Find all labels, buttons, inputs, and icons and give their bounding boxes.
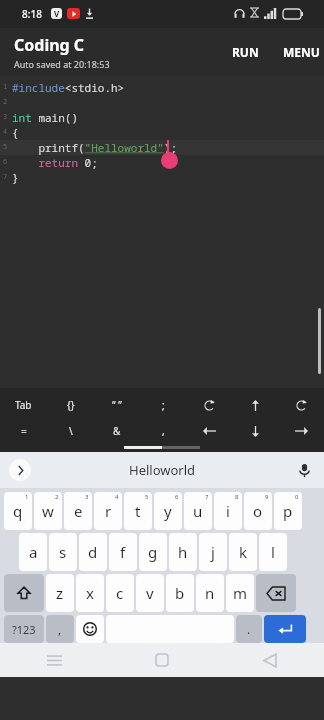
button[interactable]: v: [136, 574, 164, 612]
staticText: \: [69, 424, 73, 438]
button[interactable]: t: [124, 492, 152, 530]
button[interactable]: b: [166, 574, 194, 612]
button[interactable]: w: [34, 492, 62, 530]
staticText: ?123: [12, 622, 36, 637]
staticText: 7: [3, 172, 8, 182]
button[interactable]: =: [0, 420, 47, 442]
button[interactable]: a: [19, 533, 47, 571]
button[interactable]: Backspace: [256, 574, 296, 612]
staticText: 1: [25, 493, 29, 501]
staticText: {: [12, 125, 19, 140]
staticText: v: [146, 583, 154, 603]
button[interactable]: More suggestions: [9, 459, 31, 481]
button[interactable]: Shift: [4, 574, 44, 612]
staticText: 6: [3, 157, 8, 167]
button[interactable]: Back: [216, 643, 324, 677]
staticText: w: [42, 501, 54, 521]
staticText: 4: [3, 127, 8, 137]
staticText: l: [271, 542, 275, 562]
button[interactable]: n: [196, 574, 224, 612]
staticText: ,: [58, 621, 62, 637]
button[interactable]: m: [226, 574, 254, 612]
button[interactable]: Left: [186, 420, 232, 442]
button[interactable]: ,: [140, 420, 186, 442]
button[interactable]: ;: [140, 394, 186, 416]
button[interactable]: Redo2: [278, 394, 324, 416]
button[interactable]: s: [49, 533, 77, 571]
button[interactable]: RUN: [226, 36, 265, 68]
button[interactable]: &: [94, 420, 140, 442]
staticText: b: [175, 583, 185, 603]
staticText: j: [211, 542, 215, 562]
button[interactable]: p: [274, 492, 302, 530]
button[interactable]: y: [154, 492, 182, 530]
staticText: .: [247, 621, 251, 637]
button[interactable]: Helloworld: [129, 461, 196, 479]
button[interactable]: Recent apps: [0, 643, 108, 677]
button[interactable]: ,: [46, 615, 74, 643]
button[interactable]: Enter: [264, 615, 306, 643]
button[interactable]: Up: [232, 394, 278, 416]
button[interactable]: .: [236, 615, 262, 643]
staticText: 7: [205, 493, 209, 501]
staticText: y: [164, 501, 172, 521]
staticText: &: [113, 424, 121, 438]
staticText: 5: [3, 142, 8, 152]
button[interactable]: {}: [47, 394, 94, 416]
staticText: Auto saved at 20:18:53: [14, 58, 110, 70]
staticText: RUN: [232, 44, 259, 60]
button[interactable]: Right: [278, 420, 324, 442]
button[interactable]: r: [94, 492, 122, 530]
button[interactable]: z: [46, 574, 74, 612]
staticText: Tab: [15, 398, 32, 412]
button[interactable]: Voice input: [294, 460, 314, 480]
staticText: r: [105, 501, 112, 521]
staticText: =: [21, 424, 27, 438]
staticText: 5: [145, 493, 149, 501]
button[interactable]: MENU: [277, 36, 324, 68]
staticText: printf("Helloworld");: [12, 140, 177, 155]
button[interactable]: o: [244, 492, 272, 530]
button[interactable]: “ ”: [94, 394, 140, 416]
staticText: MENU: [283, 44, 320, 60]
staticText: ,: [162, 424, 165, 438]
staticText: i: [226, 501, 230, 521]
button[interactable]: k: [229, 533, 257, 571]
staticText: “ ”: [112, 398, 122, 412]
button[interactable]: x: [76, 574, 104, 612]
staticText: {}: [67, 398, 75, 412]
button[interactable]: f: [109, 533, 137, 571]
staticText: 2: [55, 493, 59, 501]
staticText: z: [56, 583, 64, 603]
button[interactable]: c: [106, 574, 134, 612]
staticText: 6: [175, 493, 179, 501]
staticText: h: [178, 542, 188, 562]
button[interactable]: q: [4, 492, 32, 530]
button[interactable]: Down: [232, 420, 278, 442]
button[interactable]: e: [64, 492, 92, 530]
staticText: V: [54, 8, 60, 19]
staticText: m: [233, 583, 248, 603]
button[interactable]: Tab: [0, 394, 47, 416]
staticText: int main(): [12, 110, 78, 125]
staticText: return 0;: [12, 155, 98, 170]
button[interactable]: d: [79, 533, 107, 571]
staticText: 3: [3, 112, 8, 122]
button[interactable]: ?123: [4, 615, 44, 643]
button[interactable]: Home: [108, 643, 216, 677]
button[interactable]: u: [184, 492, 212, 530]
staticText: 0: [295, 493, 299, 501]
staticText: 2: [3, 97, 8, 107]
staticText: q: [13, 501, 23, 521]
button[interactable]: i: [214, 492, 242, 530]
button[interactable]: j: [199, 533, 227, 571]
staticText: o: [253, 501, 263, 521]
button[interactable]: Redo: [186, 394, 232, 416]
button[interactable]: \: [47, 420, 94, 442]
button[interactable]: l: [259, 533, 287, 571]
button[interactable]: g: [139, 533, 167, 571]
staticText: 3: [85, 493, 89, 501]
button[interactable]: h: [169, 533, 197, 571]
button[interactable]: Emoji: [76, 615, 104, 643]
